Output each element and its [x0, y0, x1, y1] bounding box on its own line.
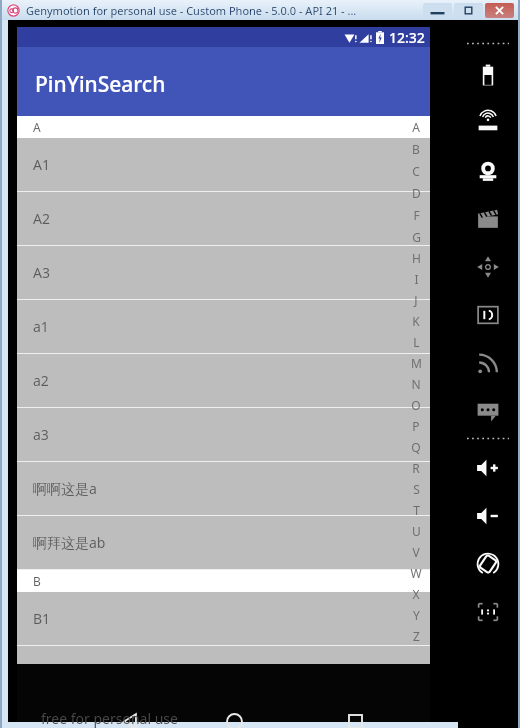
staticText: M [411, 355, 422, 371]
button[interactable]: a1 [17, 300, 430, 354]
staticText: I [414, 271, 419, 287]
button[interactable]: GPS [464, 99, 512, 147]
staticText: B [33, 573, 41, 589]
staticText: a3 [33, 425, 49, 444]
staticText: PinYinSearch [35, 70, 166, 99]
staticText: C [412, 163, 420, 179]
staticText: A2 [33, 209, 50, 228]
button[interactable]: A [17, 116, 430, 138]
button[interactable]: Back [108, 699, 152, 728]
staticText: Genymotion for personal use - Custom Pho… [26, 3, 357, 18]
staticText: F [413, 207, 420, 223]
button[interactable]: Volume down [464, 492, 512, 540]
staticText: 啊拜这是ab [33, 533, 106, 552]
staticText: B1 [33, 609, 51, 628]
button[interactable]: A2 [17, 192, 430, 246]
button[interactable]: B1 [17, 592, 430, 646]
button[interactable]: Alphabet index [402, 116, 430, 646]
button[interactable]: PinYinSearch [17, 47, 430, 116]
staticText: A3 [33, 263, 50, 282]
button[interactable]: A3 [17, 246, 430, 300]
button[interactable]: Window button [454, 3, 483, 18]
button[interactable]: Network [464, 339, 512, 387]
button[interactable]: Screen recorder [464, 195, 512, 243]
staticText: N [411, 376, 421, 392]
staticText: J [414, 292, 418, 308]
button[interactable]: a2 [17, 354, 430, 408]
staticText: A [412, 119, 420, 135]
staticText: 啊啊这是a [33, 479, 97, 498]
button[interactable]: Rotate [464, 540, 512, 588]
staticText: free for personal use [41, 709, 178, 728]
button[interactable]: Camera [464, 147, 512, 195]
button[interactable]: B [17, 570, 430, 592]
staticText: A [33, 119, 41, 135]
staticText: Q [411, 439, 421, 455]
button[interactable]: 啊啊这是a [17, 462, 430, 516]
button[interactable]: SMS [464, 387, 512, 435]
button[interactable]: A1 [17, 138, 430, 192]
staticText: R [412, 460, 420, 476]
staticText: B [412, 141, 420, 157]
button[interactable]: Battery [464, 51, 512, 99]
staticText: W [410, 565, 422, 581]
button[interactable]: Home [212, 699, 256, 728]
staticText: A1 [33, 155, 50, 174]
staticText: U [412, 523, 421, 539]
button[interactable]: Recent apps [333, 699, 377, 728]
button[interactable]: Window button [485, 3, 514, 18]
button[interactable]: Accelerometer [464, 243, 512, 291]
button[interactable]: a3 [17, 408, 430, 462]
button[interactable]: Volume up [464, 444, 512, 492]
staticText: L [413, 334, 420, 350]
staticText: a2 [33, 371, 49, 390]
staticText: 12:32 [389, 28, 425, 47]
button[interactable]: Identifiers [464, 291, 512, 339]
staticText: a1 [33, 317, 49, 336]
button[interactable]: Window button [423, 3, 452, 18]
staticText: Y [413, 607, 420, 623]
button[interactable]: 啊拜这是ab [17, 516, 430, 570]
staticText: S [413, 481, 420, 497]
staticText: V [412, 544, 420, 560]
staticText: T [413, 502, 420, 518]
staticText: O [411, 397, 421, 413]
staticText: H [412, 250, 421, 266]
staticText: K [412, 313, 420, 329]
staticText: X [412, 586, 420, 602]
staticText: D [412, 185, 421, 201]
staticText: G [412, 229, 421, 245]
button[interactable]: Scale 1:1 [464, 588, 512, 636]
staticText: P [412, 418, 420, 434]
staticText: Z [413, 628, 420, 644]
